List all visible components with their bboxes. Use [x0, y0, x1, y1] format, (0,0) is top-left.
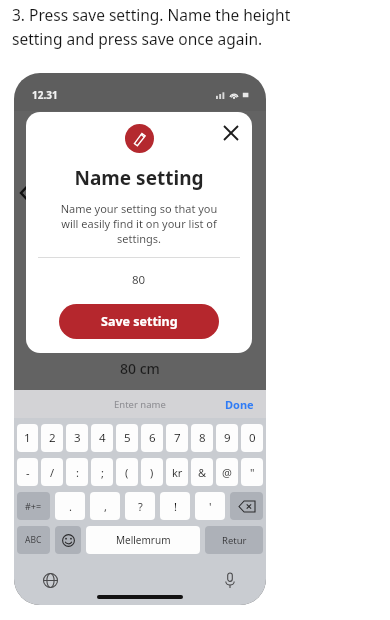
staticText: ( — [125, 465, 129, 480]
staticText: 0 — [249, 430, 256, 446]
staticText: ! — [174, 499, 177, 514]
staticText: 3. Press save setting. Name the height — [12, 4, 291, 25]
button[interactable]: Close — [216, 118, 246, 148]
button[interactable]: 8 — [191, 424, 213, 452]
staticText: Retur — [222, 534, 247, 547]
staticText: Done — [225, 397, 254, 412]
button[interactable]: ; — [91, 458, 113, 486]
staticText: : — [76, 465, 79, 480]
staticText: @ — [222, 465, 232, 480]
staticText: ABC — [25, 534, 42, 546]
button[interactable]: 7 — [166, 424, 188, 452]
staticText: Name setting — [74, 165, 204, 191]
staticText: Mellemrum — [116, 533, 171, 547]
button[interactable]: 6 — [141, 424, 163, 452]
button[interactable]: . — [55, 492, 85, 520]
button[interactable]: Voice input — [218, 568, 242, 592]
staticText: Enter name — [114, 398, 166, 411]
button[interactable]: & — [191, 458, 213, 486]
button[interactable]: ( — [116, 458, 138, 486]
staticText: / — [50, 465, 55, 480]
button[interactable]: ' — [195, 492, 225, 520]
button[interactable]: 9 — [216, 424, 238, 452]
staticText: Name your setting so that you will easil… — [52, 201, 226, 246]
staticText: 3 — [74, 430, 81, 446]
staticText: & — [198, 465, 207, 480]
button[interactable]: 3 — [66, 424, 88, 452]
button[interactable]: Retur — [205, 526, 263, 554]
button[interactable]: 4 — [91, 424, 113, 452]
button[interactable]: ! — [160, 492, 190, 520]
button[interactable]: Backspace — [230, 492, 263, 520]
button[interactable]: ABC — [17, 526, 50, 554]
staticText: 6 — [149, 430, 156, 446]
staticText: ? — [138, 499, 143, 514]
staticText: , — [104, 499, 107, 514]
button[interactable]: 80 — [26, 269, 252, 291]
button[interactable]: - — [17, 458, 38, 486]
button[interactable]: , — [90, 492, 120, 520]
button[interactable]: 1 — [17, 424, 38, 452]
staticText: ) — [150, 465, 154, 480]
staticText: setting and press save once again. — [12, 28, 263, 49]
button[interactable]: Emoji — [55, 526, 81, 554]
staticText: 8 — [199, 430, 206, 446]
button[interactable]: kr — [166, 458, 188, 486]
staticText: ' — [209, 499, 212, 514]
button[interactable]: 2 — [41, 424, 63, 452]
button[interactable]: ? — [125, 492, 155, 520]
staticText: 9 — [224, 430, 231, 446]
staticText: 80 cm — [120, 359, 160, 378]
staticText: 80 — [132, 272, 146, 288]
staticText: Save setting — [101, 313, 178, 330]
button[interactable]: Save setting — [59, 304, 219, 339]
button[interactable]: #+= — [17, 492, 50, 520]
button[interactable]: Change language — [38, 568, 62, 592]
staticText: 1 — [24, 430, 31, 446]
staticText: 12.31 — [32, 88, 58, 102]
staticText: " — [250, 465, 255, 480]
staticText: 5 — [124, 430, 131, 446]
staticText: kr — [172, 465, 183, 480]
button[interactable]: Done — [225, 397, 254, 412]
staticText: #+= — [25, 500, 42, 512]
button[interactable]: Mellemrum — [86, 526, 200, 554]
button[interactable]: : — [66, 458, 88, 486]
button[interactable]: ) — [141, 458, 163, 486]
button[interactable]: / — [41, 458, 63, 486]
button[interactable]: 0 — [241, 424, 263, 452]
button[interactable]: @ — [216, 458, 238, 486]
button[interactable]: " — [241, 458, 263, 486]
button[interactable]: 5 — [116, 424, 138, 452]
staticText: ; — [101, 465, 104, 480]
staticText: . — [69, 499, 72, 514]
staticText: 4 — [99, 430, 106, 446]
staticText: 2 — [49, 430, 56, 446]
staticText: 7 — [174, 430, 181, 446]
staticText: - — [26, 465, 30, 480]
